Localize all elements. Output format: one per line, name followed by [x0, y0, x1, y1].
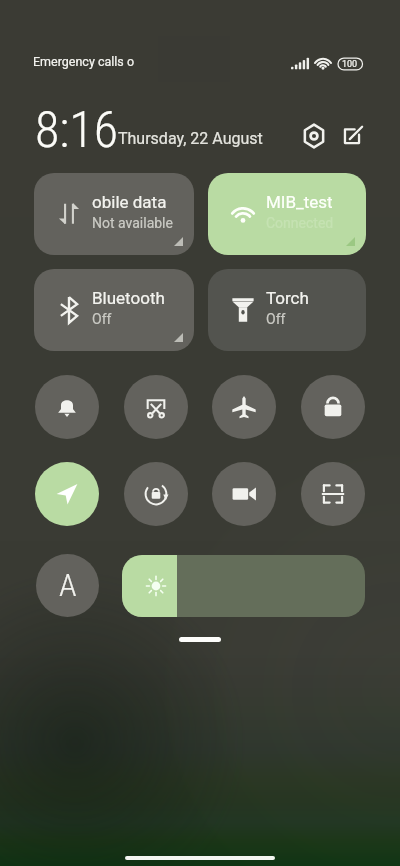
- staticText: Not available: [92, 215, 173, 231]
- staticText: Bluetooth: [92, 288, 165, 308]
- button[interactable]: MIB_test: [208, 173, 366, 255]
- button[interactable]: Bluetooth: [34, 269, 194, 351]
- staticText: A: [59, 566, 77, 604]
- button[interactable]: Settings: [298, 120, 330, 152]
- button[interactable]: Torch: [208, 269, 366, 351]
- button[interactable]: Brightness: [122, 555, 365, 617]
- staticText: 100: [342, 59, 358, 70]
- staticText: MIB_test: [266, 192, 333, 212]
- button[interactable]: Scan code: [301, 462, 365, 526]
- staticText: 8:16: [35, 101, 118, 160]
- button[interactable]: Location: [35, 462, 99, 526]
- button[interactable]: Silent mode: [35, 375, 99, 439]
- button[interactable]: Airplane mode: [212, 375, 276, 439]
- button[interactable]: Lock screen: [301, 375, 365, 439]
- staticText: Connected: [266, 215, 334, 231]
- button[interactable]: Screenshot: [124, 375, 188, 439]
- button[interactable]: Edit quick settings: [336, 120, 368, 152]
- staticText: Off: [266, 311, 286, 327]
- staticText: Off: [92, 311, 112, 327]
- staticText: Thursday, 22 August: [118, 129, 263, 148]
- staticText: Emergency calls o: [33, 54, 135, 69]
- button[interactable]: Auto rotate: [124, 462, 188, 526]
- staticText: obile data: [92, 192, 167, 212]
- button[interactable]: Screen recorder: [212, 462, 276, 526]
- button[interactable]: obile data: [34, 173, 194, 255]
- button[interactable]: Auto brightness: [36, 554, 99, 617]
- staticText: Torch: [266, 288, 309, 308]
